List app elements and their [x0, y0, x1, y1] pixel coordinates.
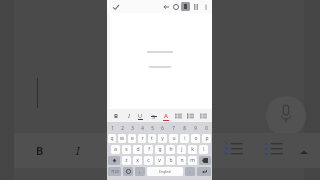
staticText: 6	[161, 125, 164, 131]
staticText: B	[114, 112, 118, 120]
staticText: 1	[111, 125, 114, 131]
staticText: 3	[131, 125, 134, 131]
button[interactable]: BACKSPACE	[199, 156, 211, 165]
button[interactable]: Voice input	[266, 96, 306, 136]
button[interactable]: e	[128, 134, 136, 143]
staticText: q	[110, 135, 114, 142]
staticText: f	[148, 146, 150, 153]
staticText: ?123	[111, 169, 119, 174]
staticText: p	[205, 135, 209, 142]
button[interactable]: 0	[202, 123, 211, 132]
button[interactable]: p	[202, 134, 211, 143]
button[interactable]: i	[180, 134, 189, 143]
button[interactable]: l	[199, 145, 208, 154]
button[interactable]: 8	[180, 123, 189, 132]
staticText: 4	[141, 125, 144, 131]
button[interactable]: ENTER	[197, 167, 211, 176]
staticText: 7	[172, 125, 175, 131]
staticText: d	[136, 146, 140, 153]
button[interactable]: s	[122, 145, 131, 154]
button[interactable]: Indent	[198, 110, 209, 122]
staticText: c	[147, 157, 150, 164]
staticText: s	[125, 146, 128, 153]
staticText: ,	[139, 168, 141, 175]
staticText: x	[136, 157, 139, 164]
button[interactable]: Numbered list	[185, 110, 196, 122]
button[interactable]: a	[111, 145, 120, 154]
button[interactable]: Attach	[191, 2, 200, 11]
staticText: .	[189, 168, 191, 175]
button[interactable]: Numbered list	[265, 141, 283, 159]
button[interactable]: Redo	[171, 2, 180, 11]
button[interactable]: Underline	[135, 110, 146, 122]
staticText: 9	[194, 125, 197, 131]
button[interactable]: Italic	[123, 110, 134, 122]
button[interactable]: Text colour	[160, 110, 171, 122]
staticText: j	[181, 146, 183, 153]
staticText: English	[159, 169, 171, 174]
staticText: v	[158, 157, 161, 164]
button[interactable]: m	[188, 156, 197, 165]
button[interactable]: 7	[169, 123, 178, 132]
button[interactable]: o	[191, 134, 200, 143]
button[interactable]: ?123	[108, 167, 121, 176]
staticText: w	[120, 135, 124, 142]
staticText: g	[158, 146, 162, 153]
button[interactable]: COMMA	[135, 167, 145, 176]
staticText: S	[152, 113, 156, 120]
button[interactable]: r	[138, 134, 146, 143]
button[interactable]: 3	[128, 123, 136, 132]
button[interactable]: g	[155, 145, 164, 154]
button[interactable]: 6	[158, 123, 167, 132]
button[interactable]: More options	[201, 2, 210, 11]
button[interactable]: Strikethrough	[148, 110, 159, 122]
button[interactable]: d	[133, 145, 142, 154]
button[interactable]: 4	[138, 123, 146, 132]
button[interactable]: PERIOD	[185, 167, 195, 176]
button[interactable]: n	[177, 156, 186, 165]
button[interactable]: EMOJI	[123, 167, 133, 176]
button[interactable]: 1	[108, 123, 116, 132]
button[interactable]: w	[118, 134, 126, 143]
button[interactable]: More	[296, 148, 312, 158]
button[interactable]: t	[148, 134, 156, 143]
button[interactable]: q	[108, 134, 116, 143]
staticText: z	[125, 157, 128, 164]
button[interactable]: Done	[111, 2, 121, 12]
button[interactable]: y	[158, 134, 167, 143]
button[interactable]: I	[68, 140, 88, 160]
button[interactable]: Undo	[161, 2, 170, 11]
staticText: I	[76, 143, 80, 158]
button[interactable]: u	[169, 134, 178, 143]
button[interactable]: c	[144, 156, 153, 165]
staticText: B	[36, 143, 44, 158]
staticText: e	[131, 135, 134, 142]
button[interactable]: English	[147, 167, 183, 176]
button[interactable]: f	[144, 145, 153, 154]
button[interactable]: Format	[181, 2, 190, 11]
button[interactable]: SHIFT	[108, 156, 120, 165]
staticText: k	[191, 146, 194, 153]
button[interactable]: 9	[191, 123, 200, 132]
staticText: n	[180, 157, 184, 164]
button[interactable]: Bulleted list	[173, 110, 184, 122]
staticText: l	[203, 146, 205, 153]
button[interactable]: x	[133, 156, 142, 165]
staticText: h	[169, 146, 173, 153]
button[interactable]: Bold	[110, 110, 121, 122]
button[interactable]: z	[122, 156, 131, 165]
staticText: 0	[205, 125, 208, 131]
button[interactable]: B	[30, 140, 50, 160]
button[interactable]: 5	[148, 123, 156, 132]
staticText: 8	[183, 125, 186, 131]
staticText: b	[169, 157, 173, 164]
staticText: A	[164, 112, 168, 120]
button[interactable]: j	[177, 145, 186, 154]
button[interactable]: 2	[118, 123, 126, 132]
button[interactable]: Bulleted list	[225, 141, 243, 159]
button[interactable]: b	[166, 156, 175, 165]
button[interactable]: v	[155, 156, 164, 165]
staticText: i	[184, 135, 186, 142]
button[interactable]: k	[188, 145, 197, 154]
button[interactable]: h	[166, 145, 175, 154]
